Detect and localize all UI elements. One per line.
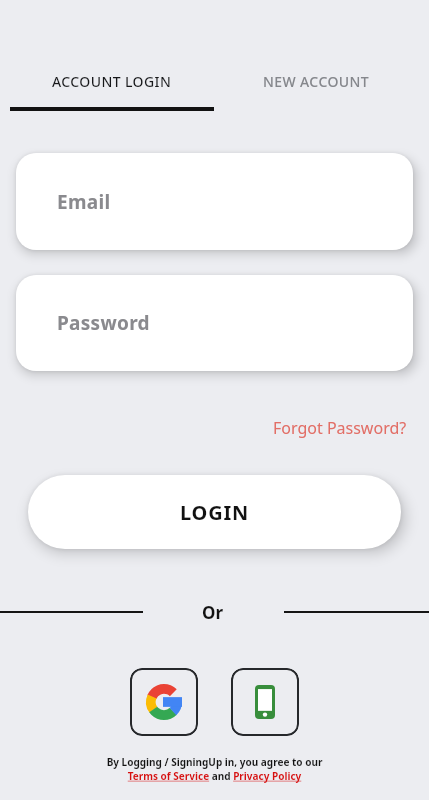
staticText: Password bbox=[57, 310, 150, 336]
staticText: NEW ACCOUNT bbox=[263, 72, 370, 91]
staticText: By Logging / SigningUp in, you agree to … bbox=[0, 755, 429, 769]
staticText: Or bbox=[202, 601, 224, 624]
button[interactable]: Email bbox=[16, 153, 413, 250]
button[interactable]: ACCOUNT LOGIN bbox=[10, 68, 214, 94]
button[interactable]: Password bbox=[16, 275, 413, 371]
button[interactable]: Forgot Password? bbox=[273, 417, 407, 439]
button[interactable] bbox=[130, 668, 198, 736]
staticText: Email bbox=[57, 189, 111, 215]
button[interactable]: Terms of Service and Privacy Policy bbox=[0, 769, 429, 783]
button[interactable]: LOGIN bbox=[28, 475, 401, 549]
staticText: ACCOUNT LOGIN bbox=[52, 72, 172, 91]
button[interactable] bbox=[231, 668, 299, 736]
button[interactable]: NEW ACCOUNT bbox=[214, 68, 419, 94]
staticText: LOGIN bbox=[180, 499, 250, 526]
